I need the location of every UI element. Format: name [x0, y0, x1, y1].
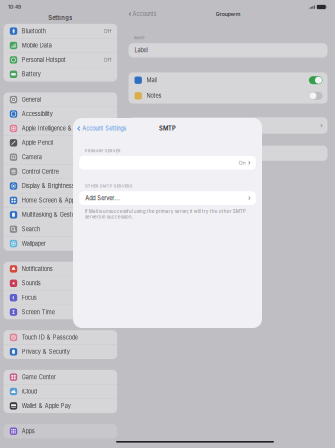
button[interactable]: Battery — [4, 67, 117, 81]
staticText: Game Center — [22, 374, 56, 380]
button[interactable]: Mobile Data — [4, 38, 117, 53]
button[interactable]: Multitasking & Gestures — [4, 208, 117, 222]
button[interactable]: Wallpaper — [4, 236, 117, 251]
staticText: Screen Time — [22, 309, 55, 315]
staticText: iCloud — [22, 388, 37, 395]
staticText: Sounds — [22, 280, 41, 287]
staticText: General — [22, 96, 41, 103]
button[interactable]: Display & Brightness — [4, 179, 117, 193]
staticText: Accounts — [132, 11, 156, 17]
staticText: Mail — [146, 77, 156, 84]
staticText: Apple Intelligence & Siri — [22, 125, 82, 132]
button[interactable]: SMTP — [128, 117, 327, 134]
staticText: Home Screen & App Library — [22, 197, 94, 204]
staticText: SMTP — [159, 125, 176, 132]
button[interactable]: Privacy & Security — [4, 345, 117, 359]
staticText: Wallet & Apple Pay — [22, 402, 71, 409]
staticText: OTHER SMTP SERVERS — [85, 184, 133, 188]
button[interactable]: Home Screen & App Library — [4, 193, 117, 208]
staticText: Accessibility — [22, 111, 53, 117]
staticText: Notifications — [22, 265, 53, 272]
staticText: Display & Brightness — [22, 183, 75, 189]
staticText: If Mail is unsuccessful using the primar… — [85, 208, 246, 220]
staticText: Label — [134, 47, 147, 54]
button[interactable]: Game Center — [4, 370, 117, 384]
button[interactable]: Notifications — [4, 262, 117, 276]
staticText: Control Centre — [22, 168, 59, 175]
staticText: Notes — [146, 92, 161, 99]
staticText: Settings — [48, 14, 72, 21]
button[interactable]: Bluetooth — [4, 24, 117, 38]
button[interactable]: Personal Hotspot — [4, 53, 117, 67]
staticText: Mobile Data — [22, 42, 52, 49]
staticText: Apple Pencil — [22, 139, 53, 146]
button[interactable]: Touch ID & Passcode — [4, 330, 117, 345]
button[interactable]: General — [4, 92, 117, 107]
button[interactable]: Sounds — [4, 276, 117, 290]
staticText: Add Server... — [85, 195, 120, 201]
button[interactable]: Apple Intelligence & Siri — [4, 121, 117, 136]
button[interactable]: Apple Pencil — [4, 136, 117, 150]
button[interactable]: Camera — [4, 150, 117, 164]
staticText: Account Settings — [82, 125, 126, 132]
staticText: Groupwm — [215, 11, 240, 17]
staticText: 10:49 — [8, 4, 21, 10]
staticText: Off — [104, 28, 112, 34]
button[interactable]: Mail — [128, 72, 327, 88]
staticText: On — [238, 160, 245, 166]
staticText: IMAP — [134, 35, 145, 40]
button[interactable]: Search — [4, 222, 117, 236]
staticText: Apps — [22, 428, 35, 435]
staticText: Camera — [22, 154, 42, 161]
button[interactable]: Accessibility — [4, 107, 117, 121]
button[interactable]: On — [79, 156, 256, 170]
button[interactable]: Add Server... — [79, 191, 256, 205]
staticText: PRIMARY SERVER — [85, 148, 121, 153]
staticText: Wallpaper — [22, 240, 46, 247]
button[interactable]: Account Settings — [73, 121, 126, 135]
button[interactable]: Apps — [4, 424, 117, 438]
staticText: Battery — [22, 71, 41, 78]
staticText: Touch ID & Passcode — [22, 334, 78, 341]
button[interactable]: Focus — [4, 290, 117, 305]
button[interactable]: iCloud — [4, 384, 117, 399]
staticText: Personal Hotspot — [22, 56, 66, 63]
button[interactable]: Control Centre — [4, 164, 117, 179]
button[interactable]: Screen Time — [4, 305, 117, 319]
staticText: Focus — [22, 294, 37, 301]
staticText: Bluetooth — [22, 28, 46, 34]
staticText: Off — [104, 57, 112, 63]
staticText: Search — [22, 226, 40, 233]
button[interactable]: Accounts — [121, 8, 156, 19]
staticText: Multitasking & Gestures — [22, 211, 83, 218]
button[interactable]: Notes — [128, 88, 327, 104]
staticText: Privacy & Security — [22, 348, 70, 355]
button[interactable]: Wallet & Apple Pay — [4, 399, 117, 413]
